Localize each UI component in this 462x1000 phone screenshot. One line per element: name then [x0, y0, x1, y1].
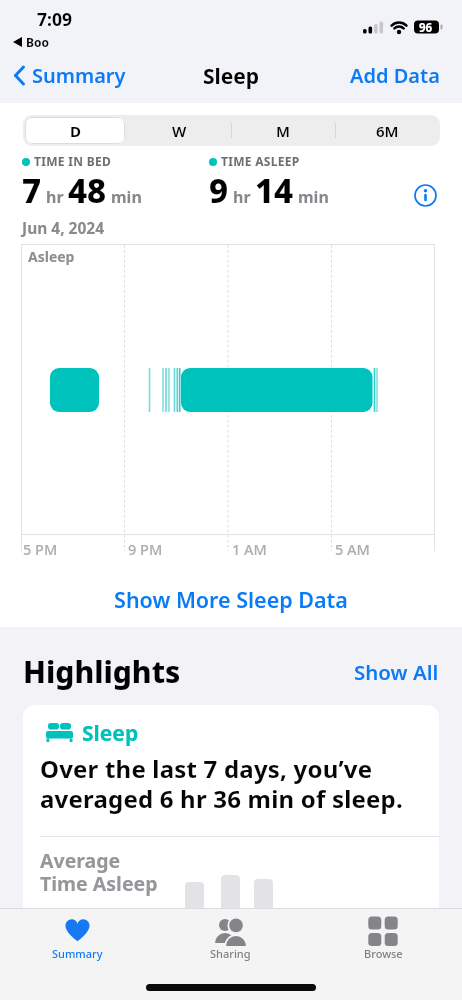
- staticText: hr: [233, 186, 251, 208]
- staticText: 9 PM: [128, 539, 163, 559]
- staticText: 7:09: [37, 7, 72, 31]
- staticText: Over the last 7 days, you’ve averaged 6 …: [40, 752, 403, 815]
- staticText: 7: [22, 168, 42, 213]
- staticText: 96: [419, 20, 433, 36]
- button[interactable]: 6M: [335, 115, 439, 146]
- staticText: Summary: [32, 62, 126, 89]
- button[interactable]: W: [127, 115, 231, 146]
- staticText: M: [276, 121, 290, 141]
- button[interactable]: Browse: [352, 918, 414, 961]
- button[interactable]: M: [231, 115, 335, 146]
- button[interactable]: Show More Sleep Data: [0, 585, 462, 614]
- staticText: TIME ASLEEP: [221, 153, 300, 169]
- button[interactable]: Show All: [354, 658, 439, 686]
- staticText: 1 AM: [232, 539, 267, 559]
- staticText: 9: [209, 168, 229, 213]
- staticText: 48: [68, 168, 107, 213]
- staticText: Boo: [26, 34, 49, 50]
- button[interactable]: Summary: [47, 918, 107, 961]
- staticText: 5 PM: [23, 539, 58, 559]
- button[interactable]: D: [25, 117, 125, 144]
- staticText: min: [111, 186, 142, 208]
- staticText: Sleep: [0, 62, 462, 91]
- staticText: Jun 4, 2024: [22, 217, 105, 238]
- staticText: Highlights: [23, 651, 181, 692]
- staticText: Sleep: [82, 719, 139, 748]
- button[interactable]: [414, 184, 437, 207]
- staticText: TIME IN BED: [34, 153, 112, 169]
- staticText: D: [70, 121, 81, 141]
- staticText: Summary: [52, 946, 103, 961]
- staticText: 5 AM: [335, 539, 370, 559]
- staticText: Browse: [364, 946, 403, 961]
- staticText: hr: [46, 186, 64, 208]
- staticText: min: [298, 186, 329, 208]
- staticText: 14: [255, 168, 294, 213]
- staticText: Sharing: [210, 946, 251, 961]
- button[interactable]: Sharing: [198, 918, 263, 961]
- button[interactable]: Summary: [13, 62, 126, 89]
- staticText: Average Time Asleep: [40, 847, 158, 896]
- staticText: Asleep: [28, 247, 75, 266]
- staticText: W: [172, 121, 187, 141]
- button[interactable]: Sleep: [23, 705, 439, 999]
- staticText: 6M: [376, 121, 399, 141]
- button[interactable]: Add Data: [350, 62, 440, 89]
